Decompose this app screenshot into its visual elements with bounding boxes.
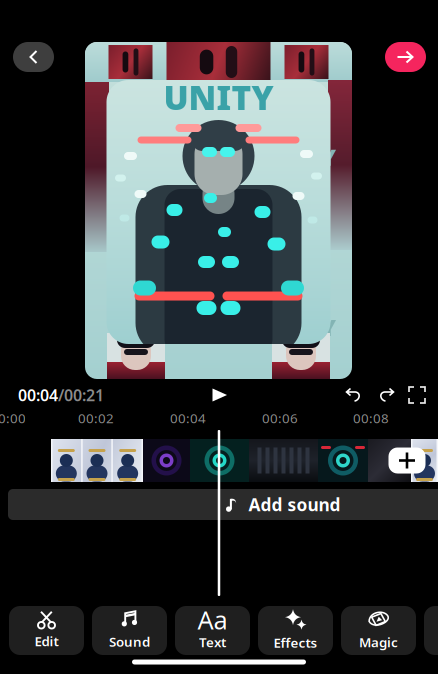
staticText: Add sound	[248, 493, 340, 516]
button[interactable]: More tools	[424, 606, 438, 655]
button[interactable]: Magic	[341, 606, 416, 655]
staticText: Y	[321, 142, 336, 172]
button[interactable]: Undo	[346, 387, 362, 402]
staticText: Effects	[273, 634, 317, 651]
staticText: 00:08	[353, 409, 389, 427]
staticText: UNITY	[163, 75, 273, 119]
button[interactable]: Add clip	[388, 447, 425, 473]
staticText: 00:02	[78, 409, 114, 427]
staticText: Magic	[359, 633, 398, 651]
button[interactable]: Play	[212, 388, 228, 402]
button[interactable]: Redo	[378, 387, 394, 402]
staticText: 00:04	[170, 409, 206, 427]
staticText: Sound	[109, 633, 150, 650]
button[interactable]: Sound	[92, 606, 167, 655]
button[interactable]: Fullscreen	[408, 386, 426, 404]
button[interactable]: Effects	[258, 606, 333, 655]
staticText: /00:21	[58, 384, 104, 406]
staticText: 00:00	[0, 409, 26, 427]
staticText: Edit	[34, 632, 58, 650]
button[interactable]: Back	[13, 42, 54, 72]
button[interactable]: Export	[385, 42, 426, 72]
staticText: 00:06	[262, 409, 298, 427]
staticText: 00:04	[18, 384, 58, 406]
staticText: Aa	[197, 603, 227, 636]
staticText: Text	[199, 633, 226, 651]
button[interactable]: Edit	[9, 606, 84, 655]
staticText: Y	[321, 312, 336, 342]
button[interactable]: Aa	[175, 606, 250, 655]
